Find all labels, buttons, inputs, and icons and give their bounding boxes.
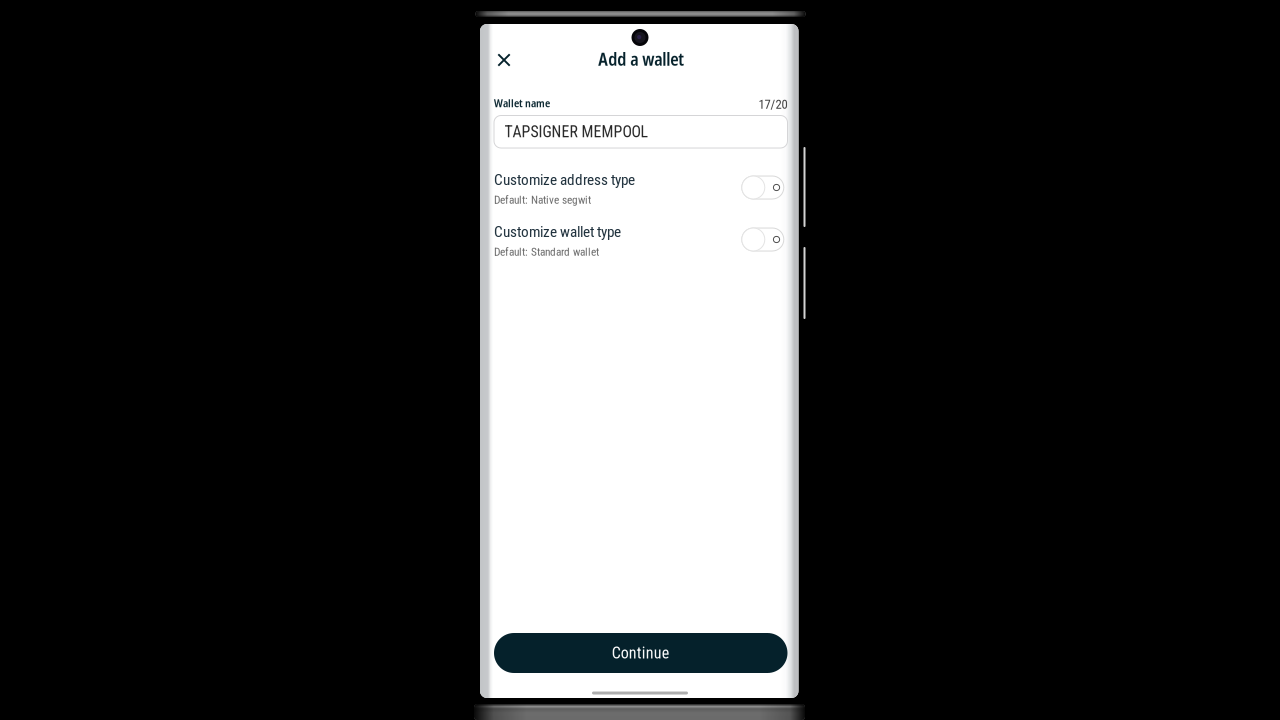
staticText: Customize wallet type [494,223,621,241]
staticText: Continue [612,644,670,662]
staticText: TAPSIGNER MEMPOOL [504,122,647,141]
staticText: Default: Standard wallet [494,245,599,259]
button[interactable]: Continue [494,633,787,673]
button[interactable]: Customize wallet type [494,223,787,253]
staticText: Customize address type [494,171,635,189]
staticText: 17/20 [758,97,787,112]
staticText: Add a wallet [598,47,684,71]
button[interactable]: Close [490,46,518,74]
staticText: Wallet name [494,95,550,110]
staticText: Default: Native segwit [494,193,591,207]
button[interactable]: Customize address type [494,171,787,201]
